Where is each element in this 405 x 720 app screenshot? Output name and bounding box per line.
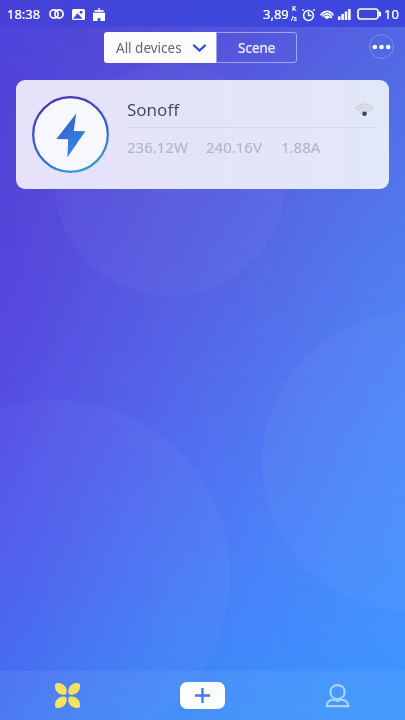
staticText: Scene	[238, 39, 276, 57]
staticText: 10	[384, 5, 399, 23]
staticText: K	[292, 4, 297, 14]
staticText: 3,89	[263, 5, 289, 23]
button[interactable]: Profile	[270, 671, 405, 720]
button[interactable]: More options	[369, 34, 394, 59]
button[interactable]: All devices	[104, 32, 216, 63]
button[interactable]: Scene	[216, 32, 297, 63]
button[interactable]: Add device	[135, 671, 270, 720]
staticText: Sonoff	[127, 98, 180, 121]
button[interactable]: Sonoff	[16, 80, 389, 189]
staticText: /s	[291, 14, 297, 24]
staticText: 240.16V	[206, 137, 262, 157]
staticText: 18:38	[7, 5, 41, 23]
staticText: 1.88A	[281, 137, 321, 157]
staticText: All devices	[116, 39, 182, 57]
staticText: 236.12W	[127, 137, 188, 157]
button[interactable]: Devices	[0, 671, 135, 720]
